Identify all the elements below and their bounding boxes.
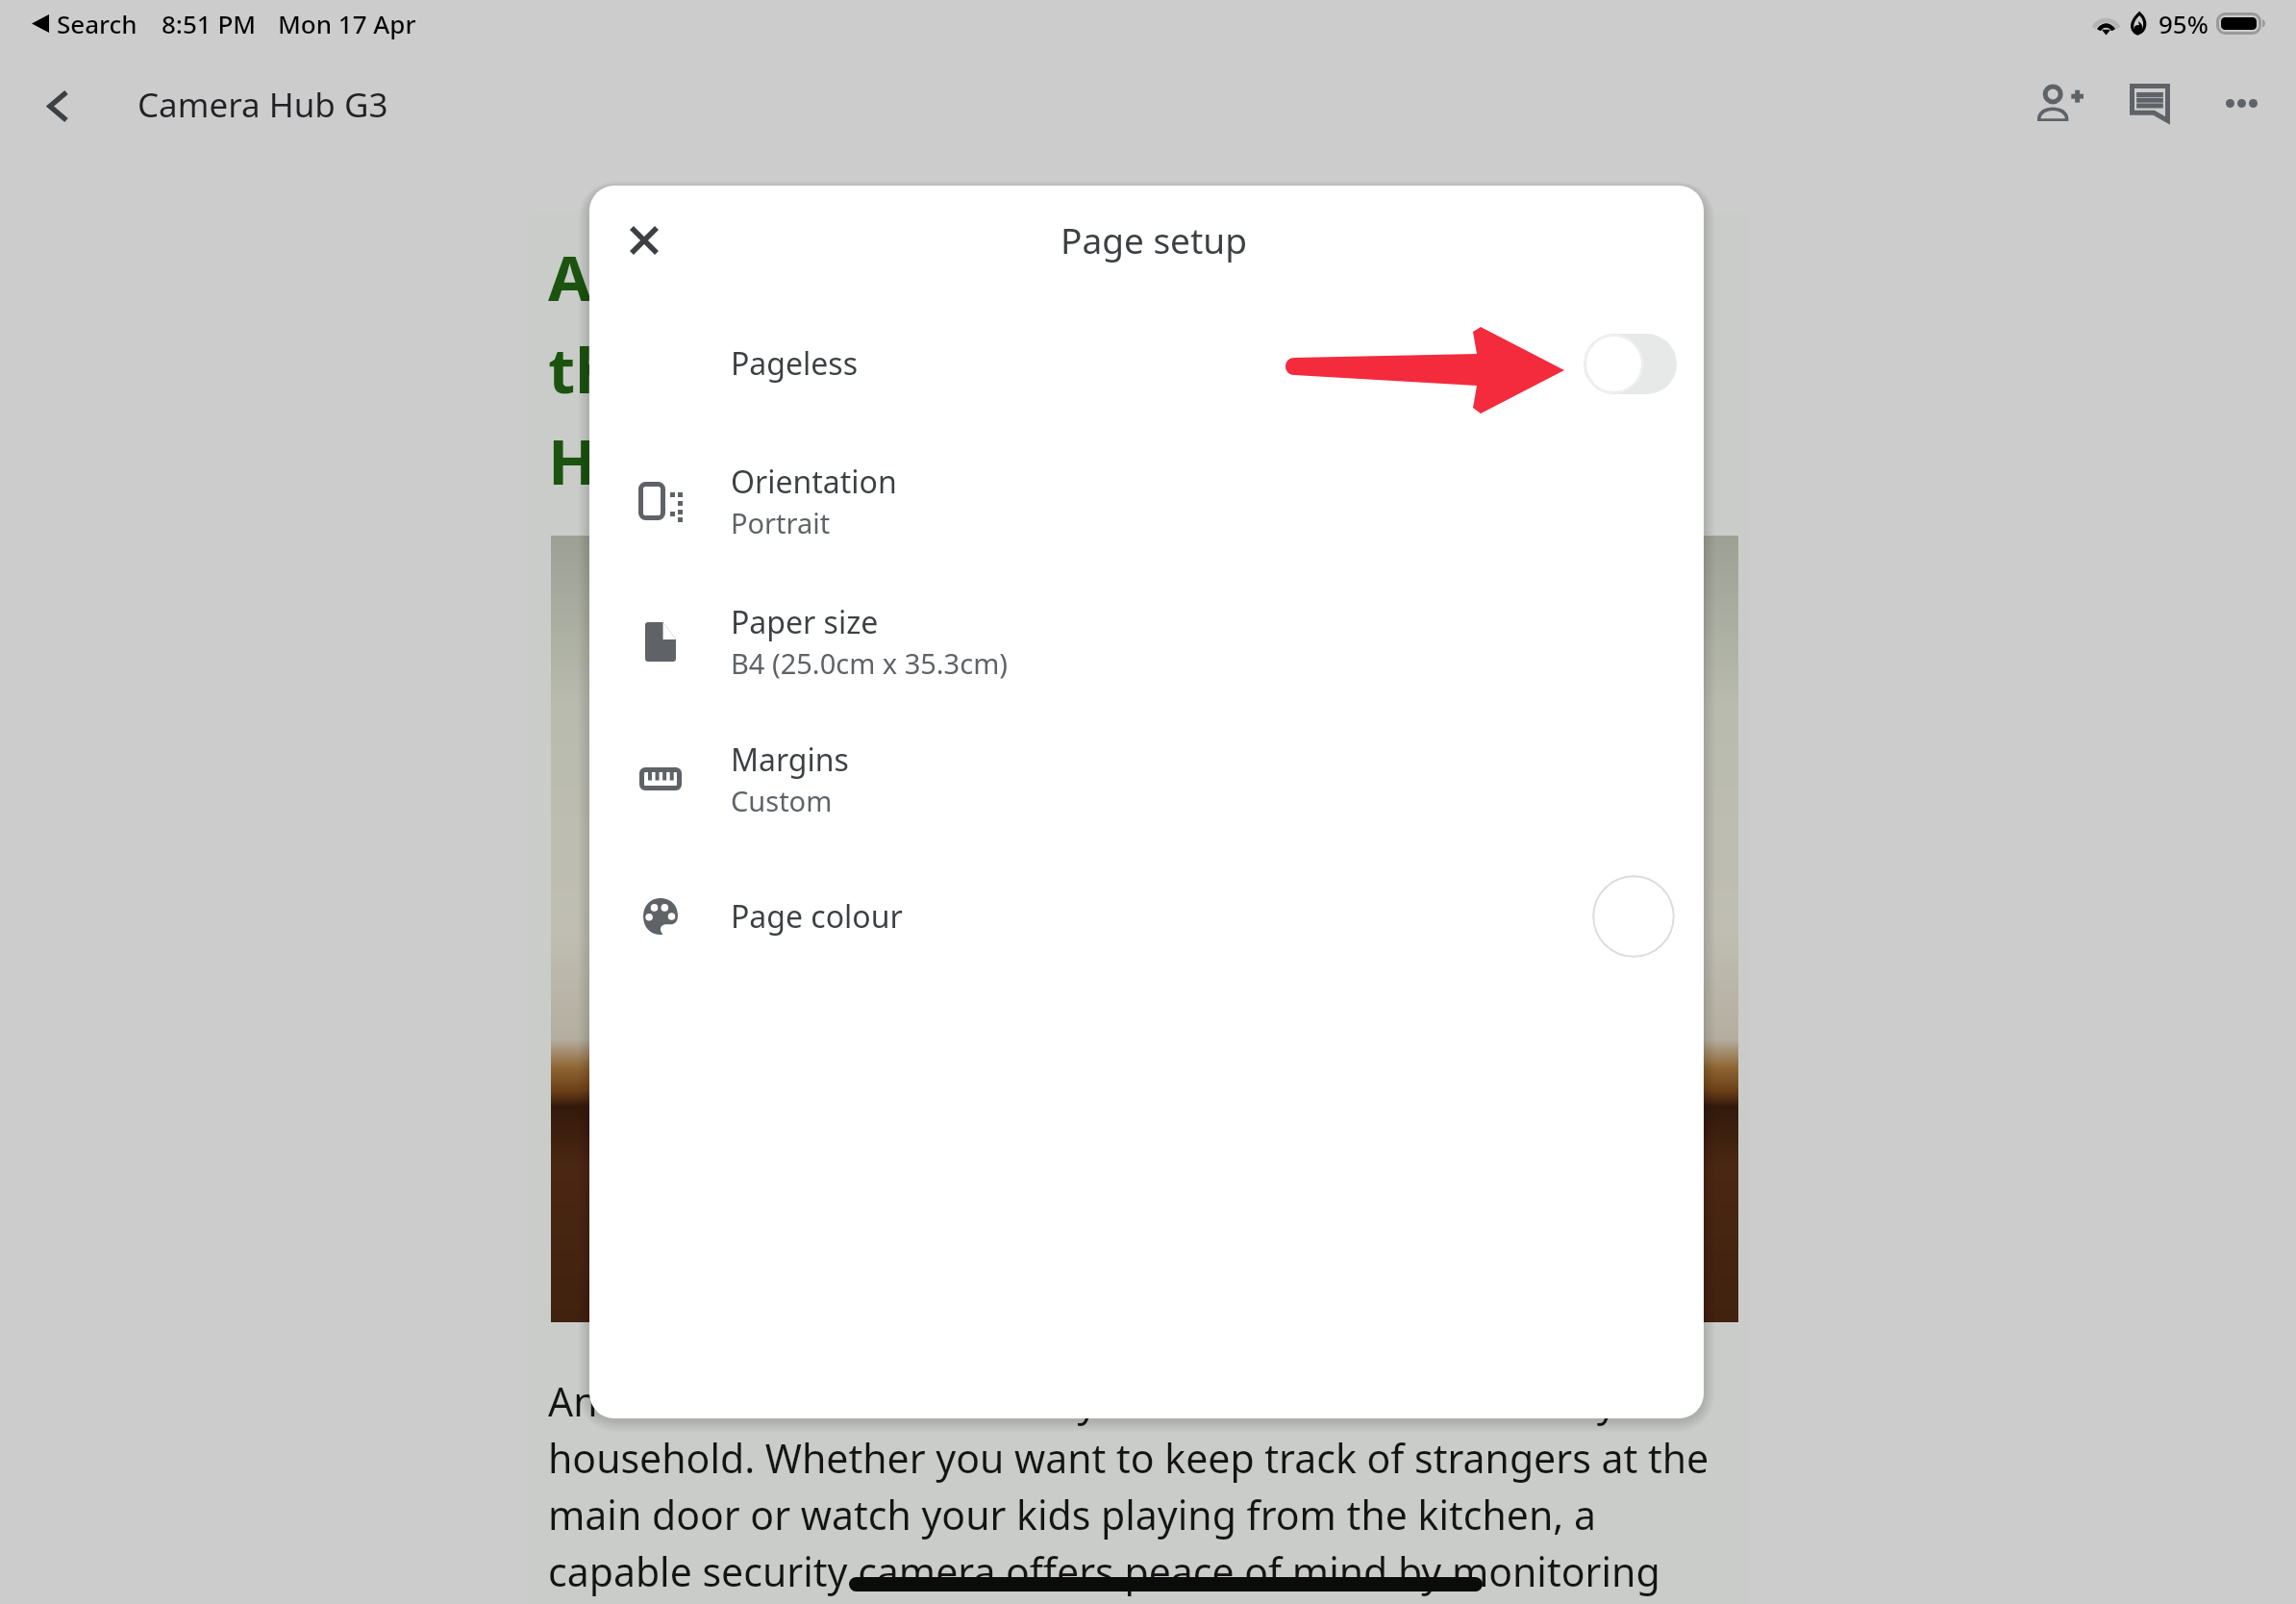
button[interactable]: Pageless bbox=[589, 293, 1704, 434]
staticText: Orientation bbox=[731, 461, 897, 503]
button[interactable]: Pageless bbox=[1584, 334, 1677, 394]
staticText: Page setup bbox=[1061, 215, 1247, 263]
staticText: Mon 17 Apr bbox=[278, 7, 416, 40]
staticText: Portrait bbox=[731, 504, 831, 541]
staticText: 95% bbox=[2159, 7, 2209, 40]
button[interactable]: Paper size bbox=[589, 571, 1704, 712]
staticText: Custom bbox=[731, 782, 833, 819]
staticText: An outdoor or indoor security camera is … bbox=[548, 1374, 1710, 1598]
staticText: Pageless bbox=[731, 342, 859, 385]
staticText: An Insightful Guide to the Best Camera H… bbox=[548, 235, 1235, 503]
button[interactable]: Orientation bbox=[589, 431, 1704, 571]
staticText: Paper size bbox=[731, 601, 879, 643]
staticText: Search bbox=[57, 7, 137, 40]
button[interactable]: Add people bbox=[2013, 57, 2106, 149]
button[interactable]: Back bbox=[12, 60, 104, 152]
button[interactable]: More options bbox=[2195, 57, 2287, 149]
staticText: Camera Hub G3 bbox=[137, 82, 388, 128]
button[interactable]: Margins bbox=[589, 709, 1704, 849]
button[interactable]: Close bbox=[598, 194, 690, 287]
button[interactable]: Page colour bbox=[589, 846, 1704, 987]
staticText: 8:51 PM bbox=[162, 7, 257, 40]
button[interactable]: Comments bbox=[2104, 57, 2196, 149]
staticText: B4 (25.0cm x 35.3cm) bbox=[731, 644, 1008, 682]
staticText: Page colour bbox=[731, 895, 903, 938]
button[interactable]: Choose page colour bbox=[1592, 875, 1675, 958]
staticText: Margins bbox=[731, 739, 849, 781]
